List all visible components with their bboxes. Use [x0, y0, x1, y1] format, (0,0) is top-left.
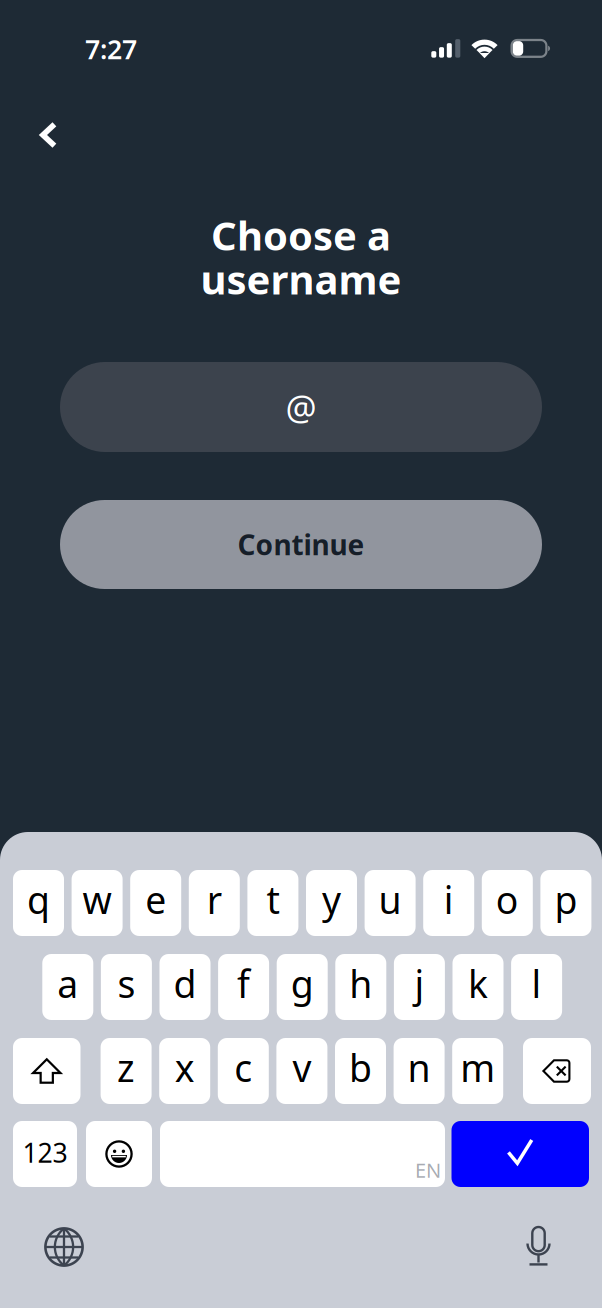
button[interactable]: Continue	[60, 500, 542, 589]
button[interactable]: e	[130, 870, 181, 936]
button[interactable]: s	[101, 954, 152, 1020]
button[interactable]: h	[335, 954, 386, 1020]
button[interactable]: Space	[160, 1121, 445, 1187]
staticText: d	[173, 959, 196, 1008]
button[interactable]: c	[218, 1038, 269, 1104]
staticText: g	[291, 959, 314, 1008]
staticText: p	[554, 875, 577, 924]
staticText: n	[408, 1043, 431, 1092]
button[interactable]: Dictation	[508, 1216, 568, 1276]
button[interactable]: z	[101, 1038, 152, 1104]
button[interactable]: f	[218, 954, 269, 1020]
button[interactable]: j	[394, 954, 445, 1020]
button[interactable]: a	[42, 954, 93, 1020]
button[interactable]: g	[277, 954, 328, 1020]
staticText: v	[292, 1043, 311, 1092]
button[interactable]: Numbers	[13, 1121, 77, 1187]
staticText: u	[379, 875, 402, 924]
staticText: x	[175, 1043, 195, 1092]
staticText: e	[145, 875, 166, 924]
button[interactable]: Delete	[523, 1038, 591, 1104]
staticText: b	[349, 1043, 372, 1092]
button[interactable]: p	[540, 870, 591, 936]
staticText: q	[27, 875, 50, 924]
staticText: a	[57, 959, 78, 1008]
staticText: s	[117, 959, 135, 1008]
button[interactable]: b	[335, 1038, 386, 1104]
staticText: o	[496, 875, 519, 924]
button[interactable]: Emoji	[86, 1121, 152, 1187]
staticText: c	[234, 1043, 252, 1092]
button[interactable]: x	[159, 1038, 210, 1104]
staticText: username	[200, 252, 401, 305]
staticText: y	[322, 875, 341, 924]
staticText: 7:27	[85, 31, 137, 67]
staticText: Choose a	[211, 208, 391, 261]
staticText: t	[266, 875, 279, 924]
button[interactable]: t	[247, 870, 298, 936]
button[interactable]: l	[511, 954, 562, 1020]
button[interactable]: q	[13, 870, 64, 936]
staticText: i	[444, 875, 454, 924]
button[interactable]: o	[482, 870, 533, 936]
button[interactable]: m	[452, 1038, 503, 1104]
staticText: k	[468, 959, 488, 1008]
button[interactable]: r	[189, 870, 240, 936]
button[interactable]: Return	[451, 1121, 589, 1187]
staticText: Continue	[237, 526, 364, 563]
staticText: h	[349, 959, 372, 1008]
button[interactable]: k	[452, 954, 503, 1020]
button[interactable]: v	[276, 1038, 327, 1104]
button[interactable]: n	[394, 1038, 445, 1104]
staticText: f	[237, 959, 250, 1008]
button[interactable]: u	[365, 870, 416, 936]
staticText: r	[207, 875, 222, 924]
button[interactable]: i	[423, 870, 474, 936]
button[interactable]: y	[306, 870, 357, 936]
staticText: w	[83, 875, 112, 924]
staticText: @	[285, 384, 316, 430]
staticText: EN	[415, 1157, 441, 1183]
staticText: z	[117, 1043, 135, 1092]
button[interactable]: Shift	[13, 1038, 80, 1104]
button[interactable]: Back	[17, 103, 81, 167]
staticText: 123	[22, 1135, 67, 1170]
button[interactable]: w	[72, 870, 123, 936]
button[interactable]: Next keyboard	[34, 1217, 94, 1277]
button[interactable]: d	[159, 954, 210, 1020]
staticText: j	[414, 959, 424, 1008]
staticText: l	[532, 959, 542, 1008]
staticText: m	[460, 1043, 495, 1092]
